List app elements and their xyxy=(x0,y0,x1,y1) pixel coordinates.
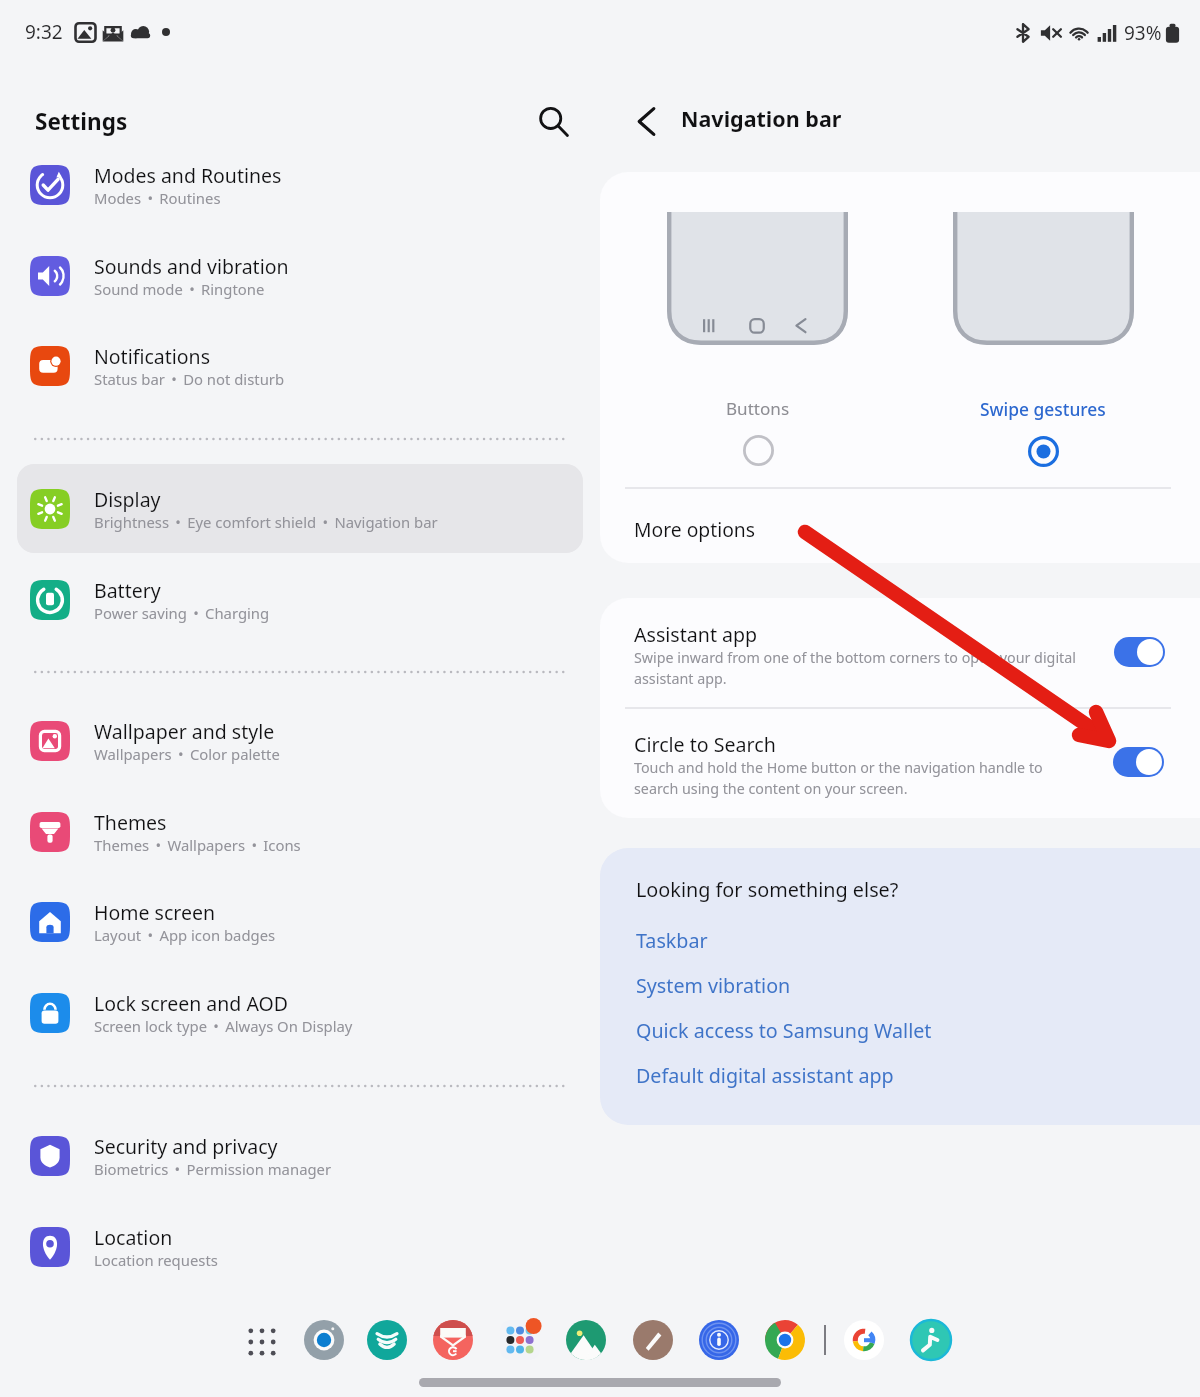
button[interactable]: Toggle xyxy=(1114,637,1165,667)
button[interactable]: Taskbar xyxy=(630,921,702,959)
staticText: Display xyxy=(94,486,161,513)
button[interactable] xyxy=(17,556,583,644)
staticText: Assistant app xyxy=(634,621,758,648)
button[interactable]: photos xyxy=(566,1320,606,1360)
button[interactable]: google xyxy=(844,1320,884,1360)
button[interactable] xyxy=(17,232,583,320)
staticText: Default digital assistant app xyxy=(636,1062,894,1089)
button[interactable]: Default digital assistant app xyxy=(630,1056,888,1094)
button[interactable] xyxy=(17,322,583,410)
staticText: Modes and Routines xyxy=(94,162,282,189)
staticText: Swipe gestures xyxy=(980,397,1106,421)
staticText: Themes xyxy=(94,809,167,836)
button[interactable] xyxy=(17,1203,583,1291)
button[interactable]: Swipe gestures xyxy=(945,397,1140,502)
button[interactable]: Search xyxy=(527,95,579,147)
button[interactable]: Toggle xyxy=(1113,747,1164,777)
staticText: Brightness • Eye comfort shield • Naviga… xyxy=(94,512,438,532)
staticText: Sound mode • Ringtone xyxy=(94,279,265,299)
button[interactable]: spotify xyxy=(367,1320,407,1360)
staticText: Touch and hold the Home button or the na… xyxy=(634,758,1043,799)
staticText: Battery xyxy=(94,577,161,604)
staticText: 93% xyxy=(1124,20,1162,46)
staticText: Lock screen and AOD xyxy=(94,990,288,1017)
staticText: Biometrics • Permission manager xyxy=(94,1159,332,1179)
button[interactable] xyxy=(600,598,1200,708)
staticText: Notifications xyxy=(94,343,210,370)
button[interactable] xyxy=(17,1112,583,1200)
button[interactable]: Apps xyxy=(240,1320,284,1364)
button[interactable]: More options xyxy=(600,494,1200,563)
staticText: Modes • Routines xyxy=(94,188,221,208)
staticText: Settings xyxy=(35,106,128,137)
button[interactable]: onedrive xyxy=(699,1320,739,1360)
button[interactable]: fit xyxy=(911,1320,951,1360)
button[interactable]: camera xyxy=(304,1320,344,1360)
staticText: Location requests xyxy=(94,1250,218,1270)
button[interactable] xyxy=(17,788,583,876)
staticText: Security and privacy xyxy=(94,1133,278,1160)
staticText: Circle to Search xyxy=(634,731,776,758)
button[interactable] xyxy=(17,969,583,1057)
staticText: Status bar • Do not disturb xyxy=(94,369,285,389)
staticText: Themes • Wallpapers • Icons xyxy=(94,835,301,855)
staticText: Taskbar xyxy=(636,927,708,954)
staticText: Screen lock type • Always On Display xyxy=(94,1016,353,1036)
staticText: Sounds and vibration xyxy=(94,253,289,280)
staticText: Power saving • Charging xyxy=(94,603,270,623)
button[interactable]: System vibration xyxy=(630,966,785,1004)
button[interactable] xyxy=(17,464,583,553)
button[interactable] xyxy=(17,878,583,966)
staticText: Quick access to Samsung Wallet xyxy=(636,1017,932,1044)
button[interactable] xyxy=(17,141,583,229)
staticText: More options xyxy=(634,516,755,542)
button[interactable] xyxy=(17,697,583,785)
staticText: Home screen xyxy=(94,899,215,926)
staticText: Swipe inward from one of the bottom corn… xyxy=(634,648,1076,689)
staticText: Location xyxy=(94,1224,173,1251)
button[interactable]: gmail xyxy=(433,1320,473,1360)
staticText: Wallpaper and style xyxy=(94,718,275,745)
staticText: Looking for something else? xyxy=(636,876,899,903)
button[interactable] xyxy=(600,709,1200,818)
staticText: 9:32 xyxy=(25,19,63,45)
staticText: Wallpapers • Color palette xyxy=(94,744,280,764)
button[interactable]: pencil xyxy=(633,1320,673,1360)
button[interactable]: Quick access to Samsung Wallet xyxy=(630,1011,926,1049)
staticText: Layout • App icon badges xyxy=(94,925,276,945)
staticText: Buttons xyxy=(726,397,790,420)
button[interactable]: Buttons xyxy=(660,397,855,502)
button[interactable]: chrome xyxy=(765,1320,805,1360)
button[interactable]: Back xyxy=(620,95,672,147)
button[interactable]: folder xyxy=(500,1320,540,1360)
staticText: System vibration xyxy=(636,972,791,999)
staticText: Navigation bar xyxy=(681,104,842,133)
